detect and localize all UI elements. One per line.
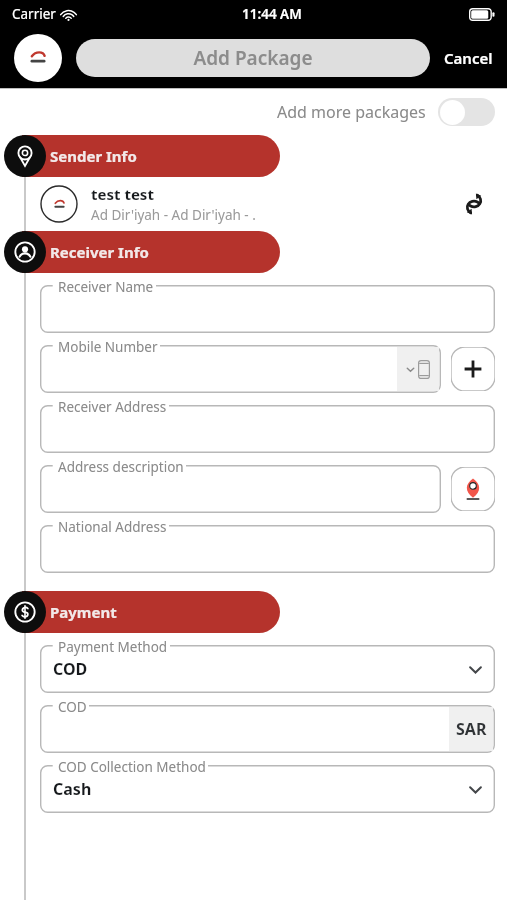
staticText: COD bbox=[53, 658, 88, 680]
staticText: Add Package bbox=[193, 45, 313, 71]
staticText: Cancel bbox=[444, 48, 493, 68]
staticText: Ad Dir'iyah - Ad Dir'iyah - . bbox=[91, 206, 256, 224]
button[interactable] bbox=[40, 405, 495, 453]
staticText: COD Collection Method bbox=[58, 758, 206, 776]
staticText: Receiver Name bbox=[58, 278, 154, 296]
button[interactable]: Logo bbox=[14, 34, 62, 82]
button[interactable]: Select country bbox=[40, 345, 441, 393]
staticText: Add more packages bbox=[277, 101, 426, 123]
button[interactable]: test test bbox=[0, 177, 507, 231]
button[interactable]: COD bbox=[40, 645, 495, 693]
button[interactable]: SAR bbox=[40, 705, 495, 753]
staticText: Address description bbox=[58, 458, 184, 476]
staticText: COD bbox=[58, 698, 87, 716]
button[interactable]: Add Package bbox=[76, 39, 430, 77]
button[interactable]: Cash bbox=[40, 765, 495, 813]
button[interactable]: Sender Info bbox=[22, 135, 280, 177]
button[interactable]: Receiver Info bbox=[22, 231, 280, 273]
staticText: test test bbox=[91, 184, 154, 204]
staticText: Receiver Info bbox=[50, 242, 149, 262]
staticText: Receiver Address bbox=[58, 398, 167, 416]
button[interactable] bbox=[40, 465, 441, 513]
staticText: Mobile Number bbox=[58, 338, 158, 356]
staticText: 11:44 AM bbox=[242, 5, 302, 23]
staticText: Carrier bbox=[12, 5, 56, 23]
button[interactable]: Payment bbox=[22, 591, 280, 633]
button[interactable]: Add more packages toggle bbox=[438, 98, 495, 126]
button[interactable]: Add number bbox=[451, 347, 495, 391]
button[interactable]: Select country bbox=[397, 347, 439, 391]
staticText: Sender Info bbox=[50, 146, 137, 166]
button[interactable]: Add more packages bbox=[277, 98, 495, 126]
button[interactable] bbox=[40, 525, 495, 573]
button[interactable]: Cancel bbox=[442, 42, 495, 74]
staticText: National Address bbox=[58, 518, 167, 536]
staticText: SAR bbox=[456, 718, 487, 740]
button[interactable]: Swap sender bbox=[459, 189, 489, 219]
button[interactable]: Pick location on map bbox=[451, 467, 495, 511]
staticText: Cash bbox=[53, 778, 92, 800]
button[interactable] bbox=[40, 285, 495, 333]
staticText: Payment bbox=[50, 602, 117, 622]
staticText: Payment Method bbox=[58, 638, 168, 656]
